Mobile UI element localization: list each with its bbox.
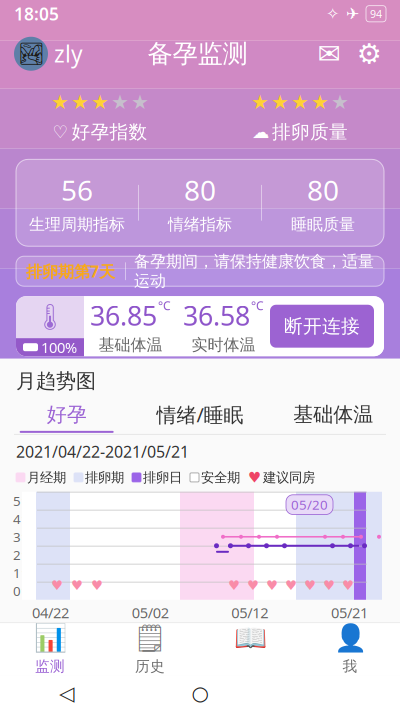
staticText: 备孕期间，请保持健康饮食，适量运动	[134, 252, 374, 291]
staticText: 排卵日	[143, 469, 182, 486]
staticText: 监测	[35, 657, 65, 675]
staticText: 05/02	[132, 603, 169, 622]
staticText: 🗒	[133, 623, 167, 653]
staticText: 我	[342, 657, 357, 675]
staticText: 05/12	[231, 603, 268, 622]
staticText: ✉	[317, 38, 340, 70]
button[interactable]: 👤	[300, 617, 400, 681]
staticText: ♥	[266, 578, 278, 593]
staticText: 好孕	[47, 402, 87, 427]
staticText: 好孕指数	[71, 120, 147, 143]
staticText: 生理周期指标	[29, 215, 125, 234]
button[interactable]: 断开连接	[270, 305, 374, 348]
button[interactable]: 🗒	[100, 617, 200, 681]
staticText: ♥	[323, 578, 335, 593]
staticText: 18:05	[14, 2, 59, 25]
staticText: 2	[13, 546, 21, 564]
staticText: 100%	[41, 337, 77, 357]
staticText: ★	[111, 91, 129, 113]
staticText: ♥	[51, 578, 63, 593]
staticText: ♡	[52, 122, 68, 142]
staticText: 月经期	[27, 469, 66, 486]
staticText: 04/22	[32, 603, 69, 622]
staticText: 排卵质量	[272, 120, 348, 143]
button[interactable]: 情绪/睡眠	[133, 401, 267, 434]
staticText: 05/20	[291, 496, 328, 513]
staticText: ♥	[342, 578, 354, 593]
staticText: 断开连接	[284, 315, 360, 338]
staticText: ✧	[326, 5, 339, 23]
staticText: 📊	[33, 623, 66, 653]
staticText: ★	[71, 91, 89, 113]
staticText: 基础体温	[293, 402, 373, 427]
staticText: 情绪/睡眠	[156, 401, 243, 428]
staticText: 36.85	[90, 298, 157, 333]
button[interactable]: 基础体温	[267, 402, 400, 433]
staticText: ★	[51, 91, 69, 113]
staticText: 56	[61, 171, 93, 209]
staticText: 🌡	[34, 303, 66, 332]
staticText: 👤	[333, 623, 366, 653]
staticText: ♥	[304, 578, 316, 593]
staticText: ♥	[285, 578, 297, 593]
staticText: 情绪指标	[168, 215, 232, 234]
staticText: ★	[271, 91, 289, 113]
staticText: ★	[311, 91, 329, 113]
staticText: 80	[184, 171, 216, 209]
staticText: ★	[251, 91, 269, 113]
staticText: ⚙	[356, 38, 381, 70]
staticText: ♥	[71, 578, 83, 593]
staticText: °C	[158, 298, 171, 314]
button[interactable]: 好孕	[0, 402, 133, 433]
button[interactable]: 📊	[0, 617, 100, 681]
staticText: ★	[291, 91, 309, 113]
staticText: 0	[13, 582, 21, 600]
staticText: 基础体温	[98, 335, 162, 355]
staticText: 📖	[233, 622, 266, 653]
staticText: 80	[307, 171, 339, 209]
button[interactable]: 消息	[312, 37, 346, 71]
staticText: 安全期	[201, 469, 240, 486]
staticText: ♥	[247, 578, 259, 593]
staticText: ☁	[252, 122, 269, 142]
staticText: 备孕监测	[147, 38, 247, 69]
staticText: 1	[13, 564, 21, 582]
staticText: ★	[131, 91, 149, 113]
staticText: 94	[370, 7, 382, 21]
staticText: 历史	[135, 657, 165, 675]
staticText: 建议同房	[263, 469, 315, 486]
staticText: 3	[13, 528, 21, 546]
staticText: ♥	[228, 578, 240, 593]
staticText: ♥	[248, 469, 261, 486]
staticText: 5	[13, 492, 21, 510]
button[interactable]: 📖	[200, 616, 300, 682]
staticText: ○	[191, 682, 208, 705]
staticText: 排卵期第7天	[26, 261, 115, 282]
staticText: 36.58	[183, 298, 250, 333]
staticText: 4	[13, 510, 21, 528]
staticText: 🏞	[17, 42, 44, 66]
staticText: ✈	[346, 5, 359, 23]
staticText: 排卵期	[85, 469, 124, 486]
staticText: 05/21	[331, 603, 368, 622]
button[interactable]: 🏞	[14, 37, 83, 71]
staticText: ◁	[59, 682, 74, 705]
staticText: 2021/04/22-2021/05/21	[16, 441, 189, 462]
staticText: 月趋势图	[16, 369, 96, 393]
staticText: zly	[54, 39, 83, 69]
staticText: °C	[251, 298, 264, 314]
staticText: ★	[91, 91, 109, 113]
staticText: 睡眠质量	[291, 215, 355, 234]
staticText: ★	[331, 91, 349, 113]
button[interactable]: 设置	[352, 37, 386, 71]
staticText: 实时体温	[191, 335, 255, 355]
staticText: ♥	[91, 578, 103, 593]
